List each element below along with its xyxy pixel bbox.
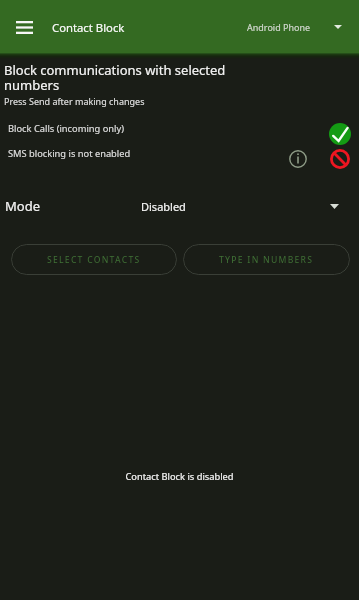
button[interactable]: Block Calls (incoming only) — [0, 117, 359, 142]
staticText: SELECT CONTACTS — [47, 254, 141, 266]
button[interactable]: Open navigation menu — [0, 0, 48, 53]
staticText: Block communications with selected numbe… — [4, 61, 239, 94]
button[interactable]: Disabled — [141, 193, 359, 219]
staticText: SMS blocking is not enabled — [8, 147, 131, 160]
staticText: Press Send after making changes — [4, 95, 145, 107]
staticText: Block Calls (incoming only) — [8, 122, 124, 135]
button[interactable]: Disabled — [327, 146, 353, 171]
staticText: Mode — [5, 197, 40, 215]
button[interactable]: SELECT CONTACTS — [11, 244, 177, 275]
staticText: Android Phone — [247, 21, 311, 33]
staticText: Contact Block is disabled — [0, 470, 359, 483]
staticText: TYPE IN NUMBERS — [219, 254, 314, 266]
staticText: Contact Block — [52, 20, 125, 35]
button[interactable]: Enabled — [327, 121, 353, 146]
button[interactable]: Information — [287, 148, 309, 170]
staticText: Disabled — [141, 199, 186, 214]
button[interactable]: TYPE IN NUMBERS — [183, 244, 350, 275]
button[interactable]: Android Phone — [247, 0, 359, 53]
button[interactable]: SMS blocking is not enabled — [0, 142, 359, 167]
